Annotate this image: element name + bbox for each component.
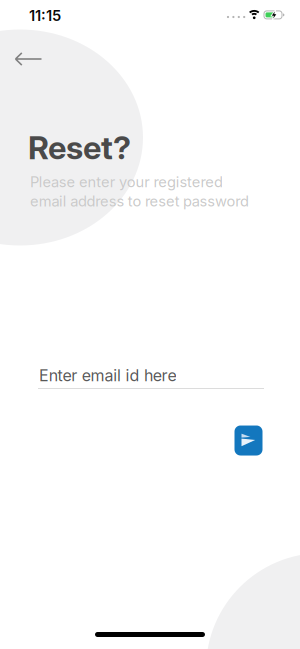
button[interactable]: Send [234,425,262,455]
staticText: 11:15 [29,7,61,24]
button[interactable]: Back [6,37,50,81]
staticText: Enter email id here [39,366,176,385]
staticText: Please enter your registered email addre… [30,173,249,210]
staticText: Reset? [28,129,131,166]
